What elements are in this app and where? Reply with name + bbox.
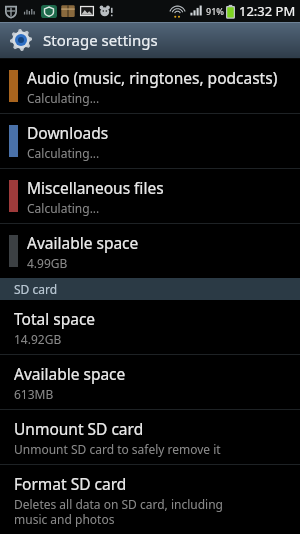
button[interactable]: Miscellaneous files [0, 169, 300, 223]
staticText: Format SD card [14, 473, 127, 494]
staticText: Audio (music, ringtones, podcasts) [27, 67, 278, 88]
staticText: Calculating... [27, 145, 100, 161]
staticText: 14.92GB [14, 331, 62, 347]
button[interactable]: Downloads [0, 114, 300, 168]
button[interactable]: Audio (music, ringtones, podcasts) [0, 59, 300, 113]
staticText: Unmount SD card to safely remove it [14, 441, 221, 457]
staticText: Deletes all data on SD card, including m… [14, 496, 223, 527]
button[interactable]: Total space [0, 300, 300, 354]
staticText: 613MB [14, 386, 54, 402]
staticText: Storage settings [43, 30, 158, 50]
button[interactable]: Available space [0, 355, 300, 409]
staticText: 12:32 PM [239, 2, 296, 20]
staticText: SD card [14, 281, 58, 297]
staticText: 4.99GB [27, 255, 68, 271]
button[interactable]: Available space [0, 224, 300, 278]
staticText: Downloads [27, 122, 109, 143]
staticText: 91% [206, 5, 224, 17]
staticText: Available space [14, 363, 126, 384]
staticText: Calculating... [27, 90, 100, 106]
staticText: Available space [27, 232, 139, 253]
button[interactable]: Unmount SD card [0, 410, 300, 464]
staticText: Miscellaneous files [27, 177, 164, 198]
button[interactable]: Format SD card [0, 465, 300, 534]
staticText: Calculating... [27, 200, 100, 216]
staticText: Unmount SD card [14, 418, 144, 439]
staticText: Total space [14, 308, 96, 329]
